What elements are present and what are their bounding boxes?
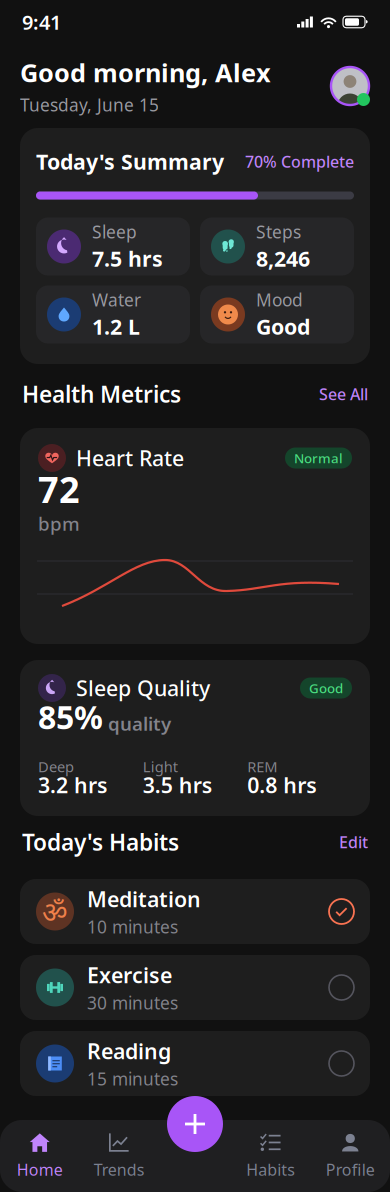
staticText: 72 xyxy=(38,465,80,513)
staticText: Trends xyxy=(94,1159,145,1180)
button[interactable]: Add xyxy=(167,1096,223,1152)
staticText: 7.5 hrs xyxy=(92,244,163,273)
staticText: Today's Habits xyxy=(22,827,179,857)
button[interactable]: Profile xyxy=(330,66,370,106)
button[interactable]: 70% Complete xyxy=(245,151,354,172)
staticText: 0.8 hrs xyxy=(247,771,317,799)
staticText: Steps xyxy=(256,220,301,243)
staticText: 30 minutes xyxy=(87,991,178,1014)
staticText: Water xyxy=(92,288,141,311)
staticText: 70% Complete xyxy=(245,151,354,172)
staticText: Profile xyxy=(326,1159,375,1180)
staticText: Normal xyxy=(294,449,343,467)
button[interactable]: Trends xyxy=(79,1131,159,1181)
staticText: Light xyxy=(143,757,178,776)
staticText: 9:41 xyxy=(22,9,61,35)
button[interactable]: Profile xyxy=(310,1131,390,1181)
staticText: 85% xyxy=(38,695,103,738)
staticText: quality xyxy=(108,711,171,736)
staticText: Heart Rate xyxy=(76,444,184,472)
staticText: Deep xyxy=(38,757,74,776)
staticText: Tuesday, June 15 xyxy=(20,93,159,116)
staticText: Home xyxy=(17,1159,63,1180)
staticText: 3.5 hrs xyxy=(143,771,213,799)
staticText: Health Metrics xyxy=(22,379,181,409)
staticText: Sleep xyxy=(92,220,137,243)
staticText: See All xyxy=(319,383,368,405)
staticText: Reading xyxy=(87,1037,171,1065)
button[interactable]: Reading xyxy=(20,1031,370,1096)
staticText: 8,246 xyxy=(256,244,310,273)
staticText: Edit xyxy=(339,831,368,853)
staticText: 1.2 L xyxy=(92,312,140,341)
staticText: Good xyxy=(256,312,310,341)
staticText: Habits xyxy=(246,1159,295,1180)
staticText: ॐ xyxy=(42,893,68,930)
button[interactable]: ॐ xyxy=(20,879,370,944)
staticText: Today's Summary xyxy=(36,147,224,176)
staticText: REM xyxy=(247,757,277,776)
staticText: Exercise xyxy=(87,961,172,989)
staticText: Good xyxy=(309,679,343,697)
staticText: Sleep Quality xyxy=(76,674,210,702)
button[interactable]: Exercise xyxy=(20,955,370,1020)
button[interactable]: Edit xyxy=(339,831,368,853)
button[interactable]: Home xyxy=(0,1131,79,1181)
staticText: Good morning, Alex xyxy=(20,56,271,89)
staticText: 3.2 hrs xyxy=(38,771,108,799)
staticText: Meditation xyxy=(87,885,201,913)
staticText: 10 minutes xyxy=(87,915,178,938)
button[interactable]: Habits xyxy=(231,1131,310,1181)
staticText: Mood xyxy=(256,288,303,311)
staticText: 15 minutes xyxy=(87,1067,178,1090)
button[interactable]: See All xyxy=(319,383,368,405)
staticText: bpm xyxy=(38,511,80,536)
